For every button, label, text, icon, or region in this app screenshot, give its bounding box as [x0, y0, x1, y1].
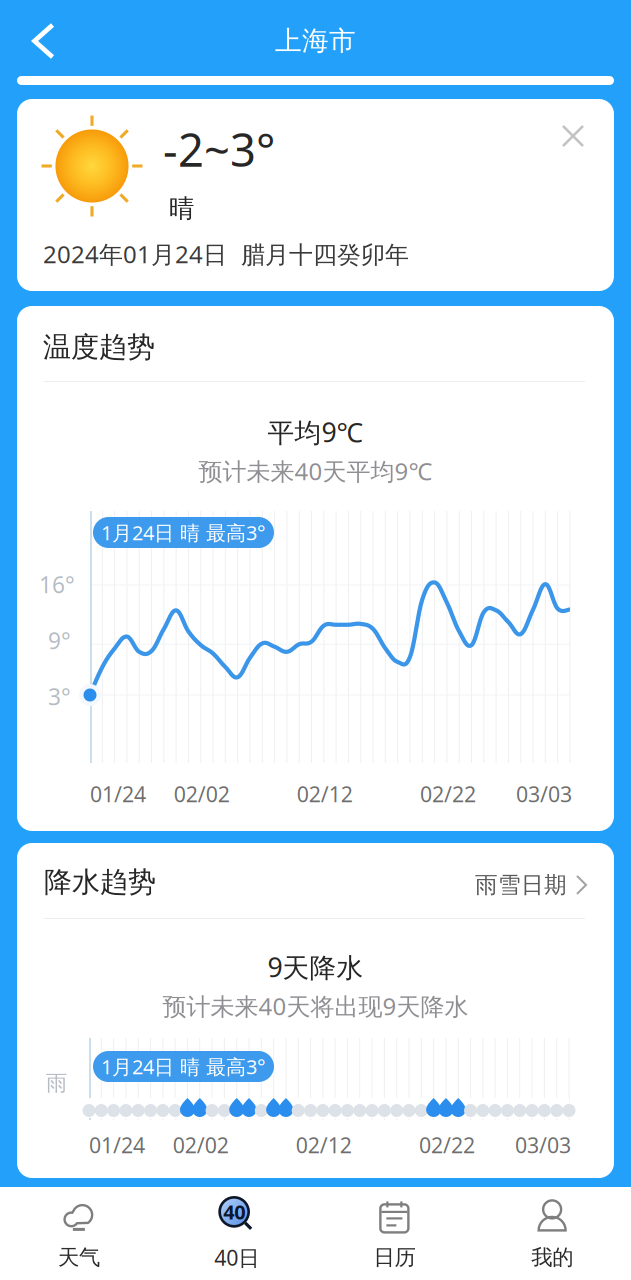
button[interactable]: 我的 [473, 1187, 631, 1280]
staticText: 天气 [58, 1244, 100, 1271]
staticText: 晴 [169, 193, 194, 224]
staticText: 上海市 [275, 24, 356, 57]
staticText: 平均9℃ [267, 414, 363, 450]
staticText: 日历 [373, 1244, 415, 1271]
staticText: 02/02 [174, 780, 230, 808]
staticText: 2024年01月24日 腊月十四癸卯年 [43, 238, 409, 270]
staticText: 40 [223, 1199, 245, 1225]
button[interactable]: 关闭 [546, 109, 600, 163]
staticText: 02/22 [420, 780, 476, 808]
button[interactable]: 返回 [14, 3, 73, 78]
button[interactable]: 40 [158, 1187, 316, 1280]
staticText: 9天降水 [267, 949, 363, 985]
staticText: 02/22 [419, 1131, 475, 1159]
staticText: 01/24 [90, 780, 146, 808]
staticText: -2~3° [163, 119, 275, 179]
button[interactable]: 天气 [0, 1187, 158, 1280]
staticText: 我的 [531, 1244, 573, 1271]
staticText: 1月24日 晴 最高3° [101, 519, 266, 546]
staticText: 03/03 [516, 780, 572, 808]
staticText: 03/03 [515, 1131, 571, 1159]
staticText: 雨 [46, 1070, 67, 1096]
staticText: 02/12 [296, 1131, 352, 1159]
staticText: 雨雪日期 [475, 871, 567, 899]
button[interactable]: 雨雪日期 [469, 863, 594, 907]
staticText: 降水趋势 [44, 865, 156, 899]
button[interactable]: 日历 [315, 1187, 473, 1280]
staticText: 02/02 [173, 1131, 229, 1159]
staticText: 预计未来40天平均9℃ [198, 455, 432, 487]
staticText: 01/24 [89, 1131, 145, 1159]
staticText: 温度趋势 [43, 330, 155, 364]
staticText: 9° [48, 625, 71, 655]
staticText: 预计未来40天将出现9天降水 [162, 990, 468, 1022]
staticText: 40日 [214, 1243, 259, 1272]
staticText: 3° [48, 681, 71, 711]
staticText: 02/12 [297, 780, 353, 808]
staticText: 1月24日 晴 最高3° [101, 1053, 266, 1080]
staticText: 16° [39, 569, 75, 599]
